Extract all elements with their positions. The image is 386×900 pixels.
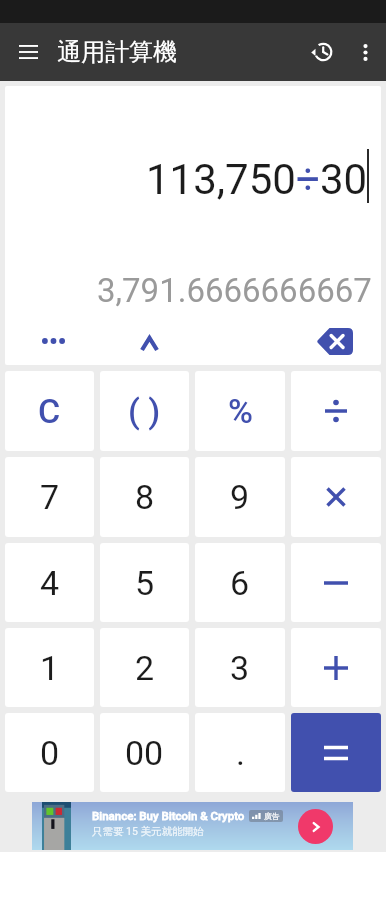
staticText: 廣告 [264, 811, 280, 821]
button[interactable]: ( ) [100, 371, 189, 451]
staticText: 113,750÷30 [146, 155, 368, 204]
button[interactable]: Menu [6, 30, 50, 74]
staticText: 6 [230, 563, 250, 603]
staticText: ( ) [128, 391, 161, 431]
staticText: % [228, 391, 253, 431]
staticText: 1 [40, 648, 60, 688]
button[interactable]: 6 [195, 543, 285, 622]
button[interactable] [291, 543, 381, 622]
button[interactable]: 5 [100, 543, 189, 622]
button[interactable]: Binance: Buy Bitcoin & Crypto [32, 802, 353, 850]
button[interactable] [291, 628, 381, 707]
button[interactable]: 1 [5, 628, 94, 707]
button[interactable]: . [195, 713, 285, 792]
button[interactable]: 2 [100, 628, 189, 707]
staticText: 只需要 15 美元就能開始 [92, 825, 204, 838]
staticText: 4 [40, 563, 60, 603]
button[interactable] [291, 713, 381, 792]
button[interactable]: 4 [5, 543, 94, 622]
button[interactable]: More options [344, 31, 386, 73]
button[interactable]: Expand [102, 317, 196, 365]
button[interactable]: % [195, 371, 285, 451]
staticText: 00 [125, 733, 164, 773]
button[interactable]: History [298, 29, 344, 75]
staticText: 3,791.6666666667 [97, 271, 372, 310]
staticText: 3 [230, 648, 250, 688]
staticText: 0 [40, 733, 60, 773]
staticText: 2 [135, 648, 155, 688]
staticText: 通用計算機 [57, 37, 177, 67]
button[interactable]: Backspace [287, 317, 381, 365]
staticText: Binance: Buy Bitcoin & Crypto [92, 809, 245, 822]
button[interactable]: 7 [5, 457, 94, 537]
button[interactable]: 3 [195, 628, 285, 707]
button[interactable] [291, 457, 381, 537]
staticText: 7 [40, 477, 60, 517]
button[interactable]: Open ad [298, 809, 333, 844]
staticText: C [38, 391, 61, 431]
button[interactable]: 0 [5, 713, 94, 792]
staticText: 5 [135, 563, 155, 603]
staticText: 8 [135, 477, 155, 517]
button[interactable] [291, 371, 381, 451]
button[interactable]: 00 [100, 713, 189, 792]
staticText: . [236, 733, 245, 773]
button[interactable]: C [5, 371, 94, 451]
button[interactable]: More [5, 317, 102, 365]
button[interactable]: 8 [100, 457, 189, 537]
button[interactable]: 9 [195, 457, 285, 537]
staticText: 9 [230, 477, 250, 517]
